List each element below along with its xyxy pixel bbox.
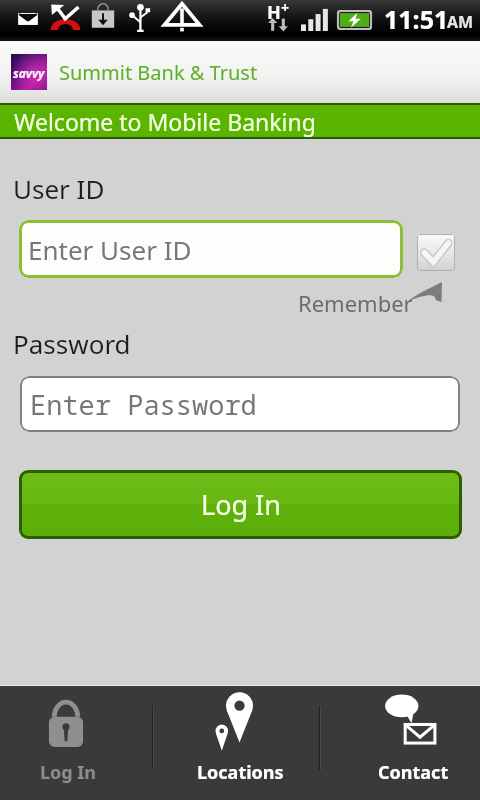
staticText: Log In [201,486,281,523]
staticText: + [281,0,290,17]
staticText: Remember [298,288,413,318]
staticText: Password [13,326,131,361]
staticText: Summit Bank & Trust [59,59,258,86]
staticText: H [267,0,281,25]
staticText: Enter User ID [28,232,192,267]
button[interactable]: Log In [0,685,152,800]
staticText: 11:51 [384,2,449,36]
button[interactable]: Locations [155,685,319,800]
staticText: User ID [13,171,105,206]
button[interactable]: Enter User ID [19,220,403,278]
button[interactable]: Log In [19,470,462,539]
staticText: AM [447,11,474,33]
staticText: Enter Password [30,386,257,423]
staticText: Welcome to Mobile Banking [14,106,316,137]
staticText: Log In [40,760,97,785]
staticText: Locations [197,760,284,785]
button[interactable]: Contact [322,685,480,800]
button[interactable]: Remember me [417,234,455,271]
staticText: savvy [13,65,45,81]
button[interactable]: Enter Password [20,376,460,432]
staticText: Contact [378,760,449,785]
